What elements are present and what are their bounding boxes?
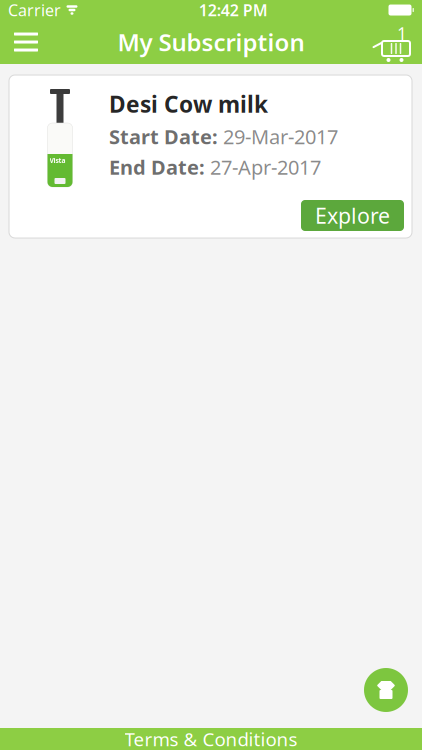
staticText: Terms & Conditions — [124, 727, 297, 750]
staticText: 27-Apr-2017 — [210, 154, 321, 180]
button[interactable]: Home — [364, 668, 408, 712]
staticText: Desi Cow milk — [109, 89, 268, 119]
button[interactable]: Terms & Conditions — [0, 728, 422, 750]
staticText: Vista — [49, 156, 65, 165]
staticText: 1 — [397, 22, 407, 45]
staticText: 12:42 PM — [199, 0, 268, 21]
button[interactable]: Explore — [301, 200, 404, 231]
staticText: Explore — [315, 201, 390, 230]
button[interactable]: Vista — [9, 75, 412, 238]
staticText: My Subscription — [117, 26, 304, 58]
button[interactable]: Cart, 1 item — [366, 20, 418, 64]
staticText: Start Date: — [109, 123, 218, 150]
button[interactable]: Menu — [4, 20, 48, 64]
staticText: End Date: — [109, 154, 205, 180]
staticText: 29-Mar-2017 — [223, 123, 338, 150]
staticText: Carrier — [8, 0, 61, 21]
